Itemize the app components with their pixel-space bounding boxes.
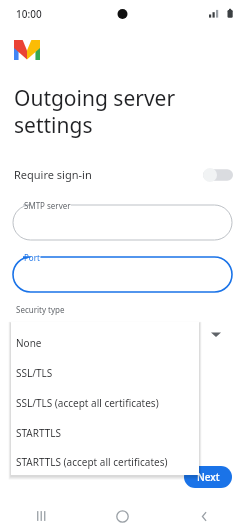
staticText: None xyxy=(16,336,42,350)
button[interactable]: Recent apps xyxy=(0,500,81,532)
button[interactable]: Require sign-in xyxy=(0,163,245,186)
button[interactable]: Next xyxy=(184,466,232,488)
staticText: SSL/TLS (accept all certificates) xyxy=(16,396,159,410)
staticText: STARTTLS xyxy=(16,426,62,440)
staticText: Port xyxy=(24,252,40,263)
staticText: STARTTLS (accept all certificates) xyxy=(16,455,168,469)
staticText: Security type xyxy=(16,304,65,315)
other: Require sign-in toggle xyxy=(203,168,233,182)
button[interactable]: Home xyxy=(81,500,163,532)
staticText: Require sign-in xyxy=(14,167,92,182)
button[interactable]: SSL/TLS xyxy=(11,358,199,388)
button[interactable]: Port xyxy=(13,250,232,292)
button[interactable]: STARTTLS (accept all certificates) xyxy=(11,448,199,475)
staticText: Outgoing server settings xyxy=(14,84,176,139)
staticText: 10:00 xyxy=(16,7,42,21)
button[interactable]: Back xyxy=(163,500,245,532)
button[interactable]: None xyxy=(11,328,199,358)
staticText: SSL/TLS xyxy=(16,366,53,380)
staticText: Next xyxy=(197,470,220,484)
button[interactable]: SMTP server xyxy=(13,198,232,240)
button[interactable]: SSL/TLS (accept all certificates) xyxy=(11,388,199,418)
staticText: SMTP server xyxy=(24,200,71,211)
button[interactable]: Open security type dropdown xyxy=(206,324,226,344)
button[interactable]: STARTTLS xyxy=(11,418,199,448)
